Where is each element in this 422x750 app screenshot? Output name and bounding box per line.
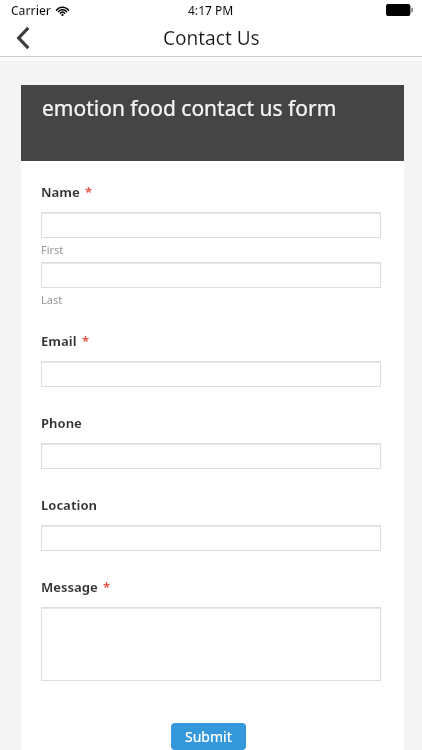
staticText: Location [41, 496, 97, 514]
button[interactable] [41, 443, 381, 469]
staticText: Name [41, 183, 80, 201]
button[interactable] [41, 525, 381, 551]
staticText: * [85, 183, 93, 201]
staticText: Submit [185, 727, 232, 746]
staticText: Email [41, 332, 77, 350]
staticText: * [82, 332, 90, 350]
button[interactable] [41, 361, 381, 387]
button[interactable] [41, 607, 381, 681]
staticText: Phone [41, 414, 82, 432]
button[interactable]: Back [0, 20, 46, 56]
staticText: emotion food contact us form [42, 94, 337, 123]
staticText: 4:17 PM [188, 2, 234, 18]
staticText: Contact Us [163, 25, 260, 51]
staticText: Message [41, 578, 98, 596]
staticText: Last [41, 292, 63, 307]
staticText: First [41, 242, 64, 257]
button[interactable] [41, 262, 381, 288]
button[interactable] [41, 212, 381, 238]
staticText: * [103, 578, 111, 596]
staticText: Carrier [11, 2, 51, 18]
button[interactable]: Submit [171, 723, 246, 750]
